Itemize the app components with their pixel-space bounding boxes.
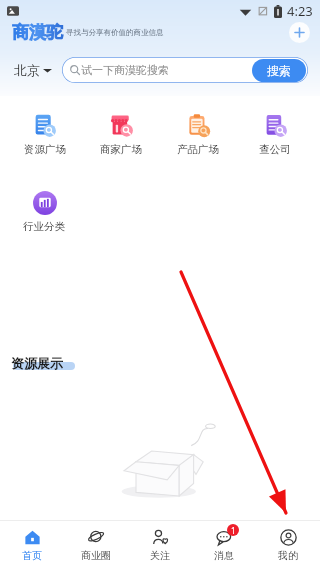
button[interactable]: Add — [289, 22, 310, 43]
button[interactable]: 商业圈 — [64, 521, 128, 568]
button[interactable]: 行业分类 — [11, 179, 77, 243]
staticText: 资源展示 — [11, 355, 63, 371]
staticText: 商漠驼 — [12, 22, 63, 43]
button[interactable]: 查公司 — [241, 102, 309, 166]
staticText: 试一下商漠驼搜索 — [81, 63, 169, 77]
button[interactable]: 首页 — [0, 521, 64, 568]
button[interactable]: 北京 — [12, 58, 54, 82]
button[interactable]: 关注 — [128, 521, 192, 568]
staticText: 查公司 — [259, 143, 291, 156]
staticText: 1 — [231, 525, 236, 536]
staticText: 资源广场 — [24, 143, 66, 156]
button[interactable]: 商家广场 — [87, 102, 155, 166]
staticText: 4:23 — [287, 2, 313, 20]
button[interactable]: 1 — [192, 521, 256, 568]
button[interactable]: 我的 — [256, 521, 320, 568]
button[interactable]: 产品广场 — [164, 102, 232, 166]
staticText: 寻找与分享有价值的商业信息 — [66, 28, 164, 37]
staticText: 消息 — [214, 549, 234, 562]
button[interactable]: 搜索 — [252, 59, 306, 82]
staticText: 商业圈 — [81, 549, 111, 562]
staticText: 产品广场 — [177, 143, 219, 156]
staticText: 首页 — [22, 549, 42, 562]
staticText: 行业分类 — [23, 220, 65, 233]
staticText: 我的 — [278, 549, 298, 562]
button[interactable]: 资源广场 — [11, 102, 78, 166]
staticText: 搜索 — [267, 63, 291, 78]
staticText: 关注 — [150, 549, 170, 562]
staticText: 北京 — [14, 62, 40, 78]
button[interactable]: 试一下商漠驼搜索 — [62, 57, 308, 83]
staticText: 商家广场 — [100, 143, 142, 156]
